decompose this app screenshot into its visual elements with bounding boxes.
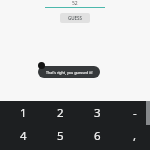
button[interactable]: 1 [8, 102, 38, 124]
button[interactable]: 6 [82, 125, 112, 147]
staticText: 3 [94, 105, 101, 121]
staticText: 1 [20, 105, 27, 121]
staticText: That's right, you guessed it! [46, 70, 93, 75]
button[interactable]: - [120, 102, 150, 124]
button[interactable]: 3 [82, 102, 112, 124]
staticText: , [133, 128, 137, 144]
staticText: GUESS [68, 15, 83, 21]
button[interactable]: , [120, 125, 150, 147]
button[interactable]: GUESS [60, 13, 90, 23]
staticText: 52 [72, 0, 78, 7]
button[interactable]: 2 [45, 102, 75, 124]
staticText: 4 [20, 128, 27, 144]
button[interactable]: 5 [45, 125, 75, 147]
staticText: - [133, 105, 137, 121]
button[interactable]: 4 [8, 125, 38, 147]
staticText: 2 [57, 105, 64, 121]
staticText: 6 [94, 128, 101, 144]
staticText: 5 [57, 128, 64, 144]
